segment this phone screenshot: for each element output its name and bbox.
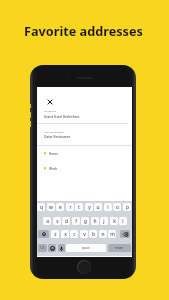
staticText: return — [115, 246, 124, 250]
button[interactable]: r — [66, 203, 74, 211]
staticText: h — [93, 218, 97, 225]
staticText: e — [59, 204, 62, 211]
staticText: v — [83, 231, 86, 238]
button[interactable]: d — [62, 217, 70, 225]
button[interactable]: z — [51, 230, 59, 238]
staticText: s — [56, 218, 59, 225]
button[interactable]: Return — [108, 244, 131, 252]
button[interactable]: e — [56, 203, 64, 211]
staticText: o — [116, 204, 119, 211]
button[interactable]: b — [89, 230, 97, 238]
staticText: l — [122, 218, 124, 225]
button[interactable]: v — [80, 230, 88, 238]
staticText: Pick me up at — [44, 110, 57, 113]
button[interactable]: Shift — [38, 230, 49, 238]
button[interactable]: Close — [45, 97, 54, 106]
button[interactable]: t — [75, 203, 83, 211]
staticText: u — [96, 204, 100, 211]
button[interactable]: s — [53, 217, 61, 225]
staticText: Qatar Restaurant — [44, 135, 70, 139]
button[interactable] — [37, 108, 132, 124]
staticText: f — [75, 218, 77, 225]
staticText: z — [54, 231, 57, 238]
button[interactable]: i — [104, 203, 112, 211]
button[interactable]: f — [72, 217, 80, 225]
button[interactable]: o — [113, 203, 121, 211]
button[interactable]: Numbers — [38, 244, 47, 252]
button[interactable] — [37, 129, 132, 145]
staticText: g — [84, 218, 87, 225]
button[interactable]: q — [37, 203, 45, 211]
staticText: q — [40, 204, 43, 211]
staticText: Work — [49, 167, 57, 171]
staticText: t — [78, 204, 80, 211]
staticText: i — [107, 204, 109, 211]
staticText: Where are you going? — [44, 131, 64, 134]
button[interactable]: Emoji — [48, 244, 56, 252]
staticText: d — [65, 218, 68, 225]
button[interactable]: l — [119, 217, 127, 225]
button[interactable]: Dictate — [58, 244, 65, 252]
staticText: c — [73, 231, 76, 238]
staticText: space — [82, 246, 90, 250]
staticText: w — [49, 204, 53, 211]
button[interactable]: y — [85, 203, 93, 211]
staticText: a — [46, 218, 49, 225]
staticText: r — [69, 204, 72, 211]
button[interactable]: c — [70, 230, 78, 238]
button[interactable]: x — [61, 230, 69, 238]
button[interactable]: space — [66, 244, 106, 252]
button[interactable]: n — [99, 230, 107, 238]
staticText: p — [126, 204, 129, 211]
button[interactable]: p — [123, 203, 131, 211]
staticText: m — [110, 231, 115, 238]
staticText: x — [64, 231, 67, 238]
button[interactable]: m — [108, 230, 116, 238]
staticText: Favorite addresses — [24, 22, 143, 39]
button[interactable]: k — [110, 217, 118, 225]
button[interactable]: Work — [37, 163, 132, 174]
staticText: y — [88, 204, 91, 211]
button[interactable]: g — [81, 217, 89, 225]
staticText: j — [103, 218, 105, 225]
staticText: n — [101, 231, 105, 238]
button[interactable]: Home — [37, 148, 132, 159]
button[interactable]: h — [91, 217, 99, 225]
staticText: k — [113, 218, 116, 225]
button[interactable]: w — [47, 203, 55, 211]
button[interactable]: j — [100, 217, 108, 225]
staticText: 123 — [40, 246, 45, 250]
staticText: Grand Hotel Bethlehem — [44, 115, 80, 119]
button[interactable]: a — [43, 217, 51, 225]
staticText: b — [92, 231, 95, 238]
button[interactable]: u — [94, 203, 102, 211]
button[interactable]: Backspace — [120, 230, 130, 238]
staticText: Home — [49, 152, 59, 156]
